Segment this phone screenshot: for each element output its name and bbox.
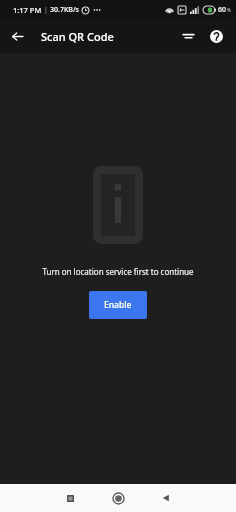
button[interactable]: Help bbox=[202, 22, 230, 50]
staticText: Scan QR Code bbox=[41, 29, 114, 44]
staticText: Enable bbox=[104, 299, 132, 311]
button[interactable]: Home bbox=[106, 486, 130, 510]
staticText: % bbox=[227, 7, 231, 13]
button[interactable]: Recents bbox=[58, 486, 82, 510]
staticText: Turn on location service first to contin… bbox=[42, 266, 194, 277]
button[interactable]: Back bbox=[0, 19, 34, 53]
staticText: 30.7KB/s bbox=[50, 5, 80, 15]
button[interactable]: Enable bbox=[89, 291, 147, 319]
staticText: 1:17 PM bbox=[13, 5, 42, 15]
staticText: 60 bbox=[218, 5, 227, 15]
button[interactable]: Filter bbox=[174, 22, 202, 50]
staticText: | bbox=[44, 5, 48, 15]
button[interactable]: Back bbox=[154, 486, 178, 510]
